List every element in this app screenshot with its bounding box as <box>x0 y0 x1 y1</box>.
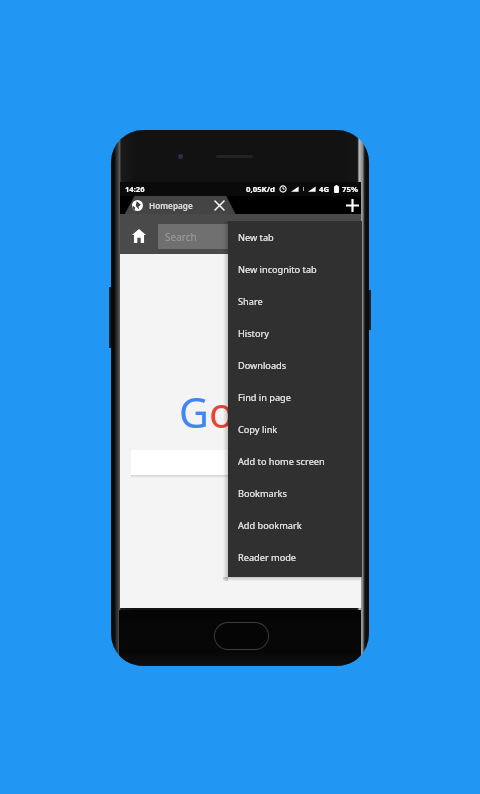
staticText: 75% <box>342 184 358 195</box>
button[interactable]: Add to home screen <box>228 445 362 477</box>
button[interactable]: Copy link <box>228 413 362 445</box>
staticText: Add to home screen <box>238 455 325 468</box>
button[interactable]: New tab <box>343 196 361 214</box>
button[interactable]: Search <box>158 224 228 249</box>
staticText: l <box>285 384 296 440</box>
button[interactable]: Bookmarks <box>228 477 362 509</box>
staticText: Copy link <box>238 423 278 436</box>
staticText: New tab <box>238 231 274 244</box>
staticText: Homepage <box>149 200 193 211</box>
button[interactable]: New tab <box>228 221 362 253</box>
staticText: o <box>209 384 234 440</box>
staticText: History <box>238 327 269 340</box>
button[interactable]: History <box>228 317 362 349</box>
staticText: G <box>179 384 209 440</box>
button[interactable]: Reader mode <box>228 541 362 573</box>
staticText: New incognito tab <box>238 263 317 276</box>
staticText: Bookmarks <box>238 487 287 500</box>
staticText: Downloads <box>238 359 287 372</box>
button[interactable]: Home <box>120 216 158 256</box>
button[interactable]: Close tab <box>212 198 226 212</box>
button[interactable] <box>131 450 350 475</box>
staticText: 0,05K/d <box>246 184 275 195</box>
button[interactable]: New incognito tab <box>228 253 362 285</box>
staticText: Find in page <box>238 391 291 404</box>
button[interactable]: Add bookmark <box>228 509 362 541</box>
staticText: Reader mode <box>238 551 297 564</box>
staticText: 4G <box>319 184 330 195</box>
staticText: Search <box>165 230 197 244</box>
staticText: Share <box>238 295 263 308</box>
button[interactable]: Downloads <box>228 349 362 381</box>
button[interactable]: Homepage <box>124 196 236 214</box>
staticText: Add bookmark <box>238 519 302 532</box>
staticText: o <box>234 384 259 440</box>
staticText: g <box>259 384 285 440</box>
staticText: 14:26 <box>125 184 145 194</box>
button[interactable]: Find in page <box>228 381 362 413</box>
button[interactable]: Share <box>228 285 362 317</box>
